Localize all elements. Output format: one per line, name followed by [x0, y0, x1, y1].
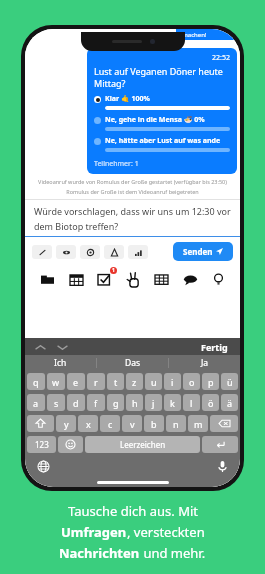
button[interactable]: Chat	[180, 269, 200, 289]
staticText: z	[132, 376, 137, 388]
staticText: k	[170, 397, 175, 409]
staticText: dem Biotop treffen?	[34, 220, 119, 232]
button[interactable]: Previous	[33, 340, 47, 354]
button[interactable]: Das	[97, 355, 168, 371]
button[interactable]: w	[47, 373, 65, 390]
staticText: v	[130, 418, 135, 430]
staticText: 1	[112, 267, 115, 274]
button[interactable]: 22:52	[87, 48, 237, 174]
button[interactable]: Files	[37, 269, 57, 289]
button[interactable]: q	[27, 373, 45, 390]
button[interactable]: s	[47, 394, 65, 411]
staticText: Ja	[201, 357, 209, 369]
button[interactable]: z	[126, 373, 143, 390]
button[interactable]: x	[78, 415, 98, 432]
staticText: d	[73, 397, 79, 409]
staticText: p	[208, 376, 214, 388]
button[interactable]: Klar 🤙 100%	[94, 93, 230, 114]
staticText: r	[94, 376, 98, 388]
staticText: Fertig	[201, 341, 228, 353]
button[interactable]: Language	[35, 458, 51, 474]
staticText: ä	[227, 397, 233, 409]
staticText: j	[152, 397, 155, 409]
button[interactable]: n	[166, 415, 186, 432]
button[interactable]: y	[56, 415, 76, 432]
button[interactable]: Poll	[128, 245, 148, 259]
button[interactable]: Next	[55, 340, 69, 354]
staticText: m	[194, 418, 203, 430]
staticText: Lust auf Veganen Döner heute Mittag?	[94, 65, 230, 89]
staticText: t	[114, 376, 118, 388]
button[interactable]: 123	[27, 436, 56, 453]
button[interactable]: l	[183, 394, 200, 411]
button[interactable]: Idea	[208, 269, 228, 289]
staticText: b	[151, 418, 157, 430]
button[interactable]: p	[202, 373, 219, 390]
staticText: i	[171, 376, 174, 388]
staticText: a	[33, 397, 39, 409]
button[interactable]: u	[145, 373, 162, 390]
button[interactable]: Ja	[169, 355, 240, 371]
button[interactable]: Return	[202, 436, 238, 453]
button[interactable]: Ich	[25, 355, 96, 371]
button[interactable]: Calendar	[66, 269, 86, 289]
button[interactable]: Backspace	[210, 415, 238, 432]
button[interactable]: d	[67, 394, 85, 411]
button[interactable]: k	[164, 394, 181, 411]
staticText: Würde vorschlagen, dass wir uns um 12:30…	[34, 205, 231, 217]
button[interactable]: Settings	[80, 245, 100, 259]
staticText: e	[73, 376, 79, 388]
button[interactable]: c	[100, 415, 120, 432]
staticText: und mehr.	[140, 544, 206, 562]
staticText: Ne, gehe in die Mensa 🍜 0%	[105, 115, 205, 125]
staticText: l	[190, 397, 193, 409]
staticText: n	[173, 418, 179, 430]
staticText: 123	[35, 439, 49, 450]
staticText: h	[132, 397, 138, 409]
staticText: ö	[208, 397, 214, 409]
button[interactable]: e	[67, 373, 85, 390]
button[interactable]: Tasks	[94, 269, 114, 289]
staticText: Tausche dich aus. Mit	[68, 502, 198, 520]
button[interactable]: Hidden	[56, 245, 76, 259]
staticText: , versteckten	[127, 523, 205, 541]
staticText: Senden	[183, 246, 213, 257]
button[interactable]: g	[107, 394, 124, 411]
button[interactable]: j	[145, 394, 162, 411]
staticText: w	[52, 376, 60, 388]
button[interactable]: t	[107, 373, 124, 390]
staticText: Videoanruf wurde von Romulus der Große g…	[38, 178, 227, 185]
button[interactable]: Ne, hätte aber Lust auf was ande 0%	[94, 135, 230, 156]
button[interactable]: Gesture	[123, 269, 143, 289]
button[interactable]: Fertig	[197, 339, 232, 355]
button[interactable]: Senden	[173, 242, 233, 261]
button[interactable]: v	[122, 415, 142, 432]
button[interactable]: Leerzeichen	[85, 436, 200, 453]
button[interactable]: ä	[221, 394, 238, 411]
button[interactable]: a	[27, 394, 45, 411]
button[interactable]: Attach	[32, 245, 52, 259]
button[interactable]: Ne, gehe in die Mensa 🍜 0%	[94, 114, 230, 135]
staticText: Umfragen	[61, 523, 127, 541]
button[interactable]: h	[126, 394, 143, 411]
button[interactable]: ö	[202, 394, 219, 411]
button[interactable]: Format	[104, 245, 124, 259]
button[interactable]: m	[188, 415, 208, 432]
button[interactable]: Shift	[27, 415, 54, 432]
staticText: o machen!	[177, 31, 207, 39]
staticText: Romulus der Große ist dem Videoanruf bei…	[66, 188, 199, 195]
staticText: y	[64, 418, 69, 430]
button[interactable]: f	[87, 394, 105, 411]
staticText: f	[94, 397, 98, 409]
staticText: q	[33, 376, 39, 388]
button[interactable]: ü	[221, 373, 238, 390]
staticText: g	[113, 397, 119, 409]
button[interactable]: o	[183, 373, 200, 390]
button[interactable]: Dictation	[214, 458, 230, 474]
button[interactable]: i	[164, 373, 181, 390]
staticText: c	[108, 418, 113, 430]
button[interactable]: Table	[151, 269, 171, 289]
button[interactable]: b	[144, 415, 164, 432]
button[interactable]: Emoji	[58, 436, 83, 453]
button[interactable]: r	[87, 373, 105, 390]
